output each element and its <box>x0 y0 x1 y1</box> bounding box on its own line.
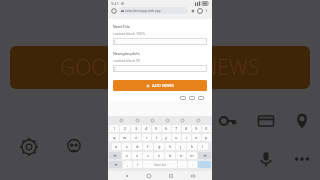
staticText: j <box>180 144 182 149</box>
button[interactable]: | <box>113 38 207 45</box>
button[interactable]: 2 <box>120 125 130 132</box>
staticText: e <box>135 135 138 140</box>
staticText: | <box>113 39 116 44</box>
button[interactable]: Keyboard tool 5 <box>196 118 201 123</box>
button[interactable]: Go <box>198 161 211 168</box>
button[interactable]: a <box>112 143 121 150</box>
button[interactable]: f <box>143 143 153 150</box>
button[interactable]: 8 <box>182 125 191 132</box>
button[interactable]: | <box>113 65 207 72</box>
button[interactable]: Keyboard tool 4 <box>180 118 185 123</box>
staticText: GOOGLE PLAY NEWS <box>60 53 260 82</box>
button[interactable]: Home <box>146 173 152 179</box>
button[interactable]: Tool 0 <box>180 95 186 101</box>
staticText: Inbox bar <box>154 163 166 167</box>
button[interactable]: 3 <box>131 125 141 132</box>
button[interactable]: ADD NEWS <box>113 80 207 91</box>
button[interactable]: Tool 1 <box>189 95 195 101</box>
staticText: m <box>190 153 194 158</box>
staticText: h <box>169 144 172 149</box>
button[interactable]: z <box>122 152 131 159</box>
button[interactable]: d <box>132 143 142 150</box>
button[interactable]: / <box>133 161 142 168</box>
button[interactable]: r <box>142 134 151 141</box>
staticText: 2 <box>124 126 127 131</box>
staticText: b <box>169 153 172 158</box>
button[interactable]: y <box>162 134 171 141</box>
button[interactable]: 1 <box>109 125 119 132</box>
button[interactable]: 4 <box>142 125 151 132</box>
button[interactable]: 6 <box>162 125 171 132</box>
button[interactable]: q <box>109 134 119 141</box>
staticText: d <box>136 144 139 149</box>
staticText: r <box>146 135 148 140</box>
button[interactable]: g <box>154 143 164 150</box>
button[interactable]: w <box>120 134 130 141</box>
button[interactable]: Back <box>124 173 130 179</box>
staticText: 3 <box>135 126 138 131</box>
button[interactable]: - <box>188 161 197 168</box>
button[interactable]: Malware <box>65 138 83 156</box>
staticText: content block: 100% <box>113 31 145 36</box>
staticText: y <box>165 135 168 140</box>
button[interactable]: Shift <box>109 152 121 159</box>
button[interactable]: Settings <box>20 138 38 156</box>
button[interactable]: Keyboard tool 3 <box>165 118 170 123</box>
staticText: v <box>158 153 161 158</box>
button[interactable]: s <box>122 143 131 150</box>
staticText: newsdemoapp.web.app <box>125 9 161 13</box>
button[interactable]: Tool 2 <box>198 95 204 101</box>
button[interactable]: Keyboard <box>190 173 196 179</box>
button[interactable]: Backspace <box>198 152 211 159</box>
staticText: NewsgroupInfo <box>113 51 140 56</box>
button[interactable]: n <box>176 152 186 159</box>
button[interactable]: Passwords <box>219 112 237 130</box>
button[interactable]: t <box>152 134 161 141</box>
button[interactable]: newsdemoapp.web.app <box>121 7 186 14</box>
button[interactable]: Inbox bar <box>143 161 177 168</box>
button[interactable]: Menu <box>204 8 209 13</box>
button[interactable]: New tab <box>190 8 196 14</box>
button[interactable]: k <box>187 143 197 150</box>
staticText: q <box>113 135 116 140</box>
staticText: / <box>137 162 139 167</box>
button[interactable]: Keyboard tool 1 <box>135 118 140 123</box>
button[interactable]: c <box>143 152 153 159</box>
button[interactable]: u <box>172 134 181 141</box>
button[interactable]: Keyboard tool 0 <box>119 118 124 123</box>
button[interactable]: Reload <box>111 8 117 14</box>
button[interactable]: p <box>202 134 211 141</box>
button[interactable]: Payment methods <box>257 112 275 130</box>
button[interactable]: , <box>123 161 132 168</box>
staticText: t <box>156 135 158 140</box>
button[interactable]: Tabs <box>197 8 203 14</box>
button[interactable]: Keyboard tool 2 <box>150 118 155 123</box>
button[interactable]: More options <box>293 150 311 168</box>
button[interactable]: e <box>131 134 141 141</box>
button[interactable]: m <box>187 152 197 159</box>
button[interactable]: 9 <box>192 125 201 132</box>
button[interactable]: v <box>154 152 164 159</box>
button[interactable]: 7 <box>172 125 181 132</box>
staticText: w <box>123 135 127 140</box>
button[interactable]: Recents <box>168 173 174 179</box>
button[interactable]: o <box>192 134 201 141</box>
button[interactable]: Symbols <box>109 161 122 168</box>
button[interactable]: h <box>165 143 175 150</box>
staticText: . <box>182 162 184 167</box>
staticText: u <box>175 135 178 140</box>
button[interactable]: j <box>176 143 186 150</box>
staticText: 7 <box>175 126 178 131</box>
button[interactable]: 0 <box>202 125 211 132</box>
button[interactable]: Voice search <box>257 150 275 168</box>
staticText: c <box>147 153 149 158</box>
button[interactable]: 5 <box>152 125 161 132</box>
staticText: ADD NEWS <box>152 83 174 89</box>
button[interactable]: l <box>198 143 208 150</box>
button[interactable]: Addresses <box>293 112 311 130</box>
button[interactable]: x <box>132 152 142 159</box>
button[interactable]: . <box>178 161 187 168</box>
button[interactable]: b <box>165 152 175 159</box>
staticText: , <box>127 162 129 167</box>
button[interactable]: i <box>182 134 191 141</box>
